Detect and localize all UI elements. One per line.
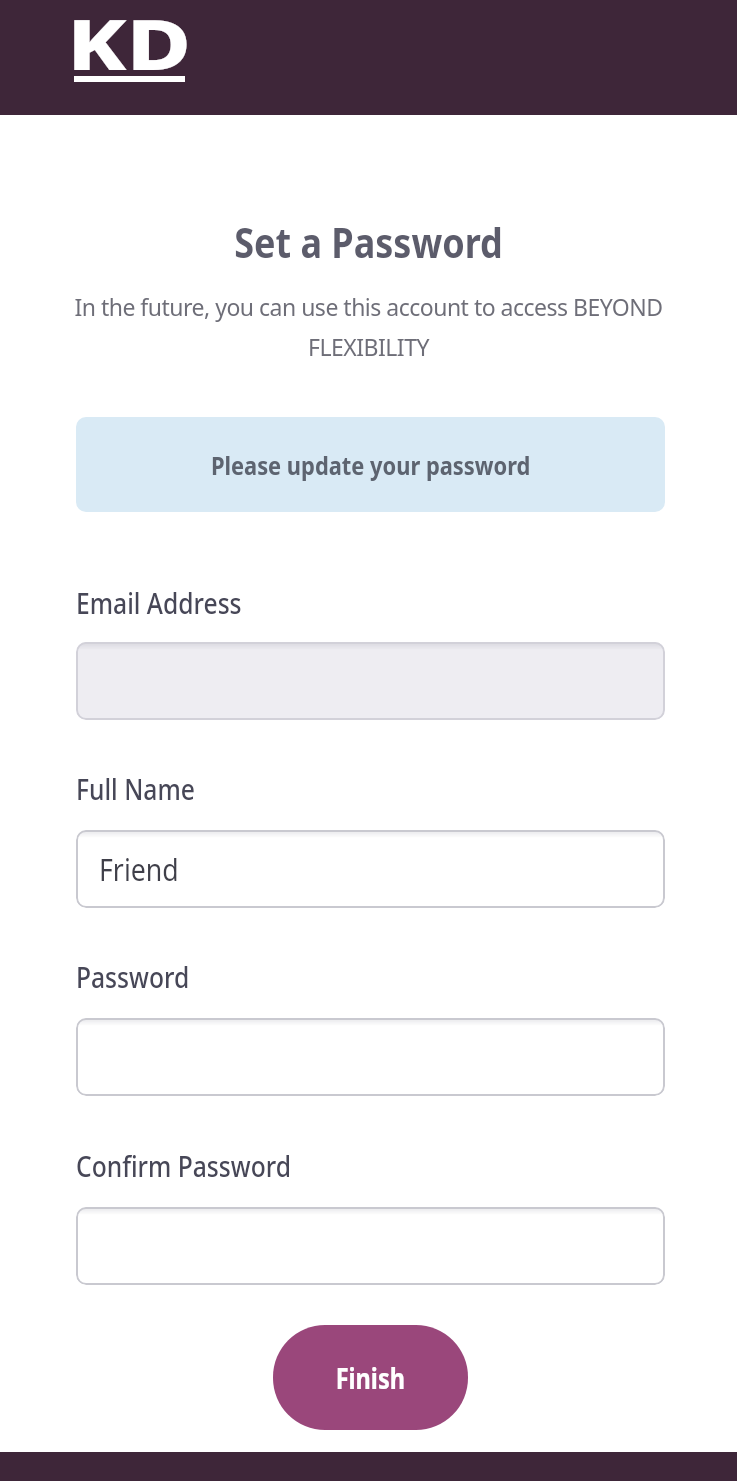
staticText: Finish <box>336 1359 405 1397</box>
staticText: Set a Password <box>53 213 684 270</box>
button[interactable]: Finish <box>273 1325 468 1430</box>
staticText: Confirm Password <box>76 1147 292 1185</box>
button[interactable] <box>76 1018 665 1096</box>
button[interactable]: Friend <box>76 830 665 908</box>
staticText: Friend <box>99 849 179 890</box>
button[interactable] <box>76 1207 665 1285</box>
button[interactable] <box>76 642 665 720</box>
staticText: KD <box>67 0 192 90</box>
button[interactable]: Please update your password <box>76 417 665 512</box>
staticText: Email Address <box>76 584 242 622</box>
staticText: Password <box>76 958 189 996</box>
staticText: In the future, you can use this account … <box>0 291 737 363</box>
staticText: Please update your password <box>211 448 531 482</box>
staticText: Full Name <box>76 770 196 808</box>
